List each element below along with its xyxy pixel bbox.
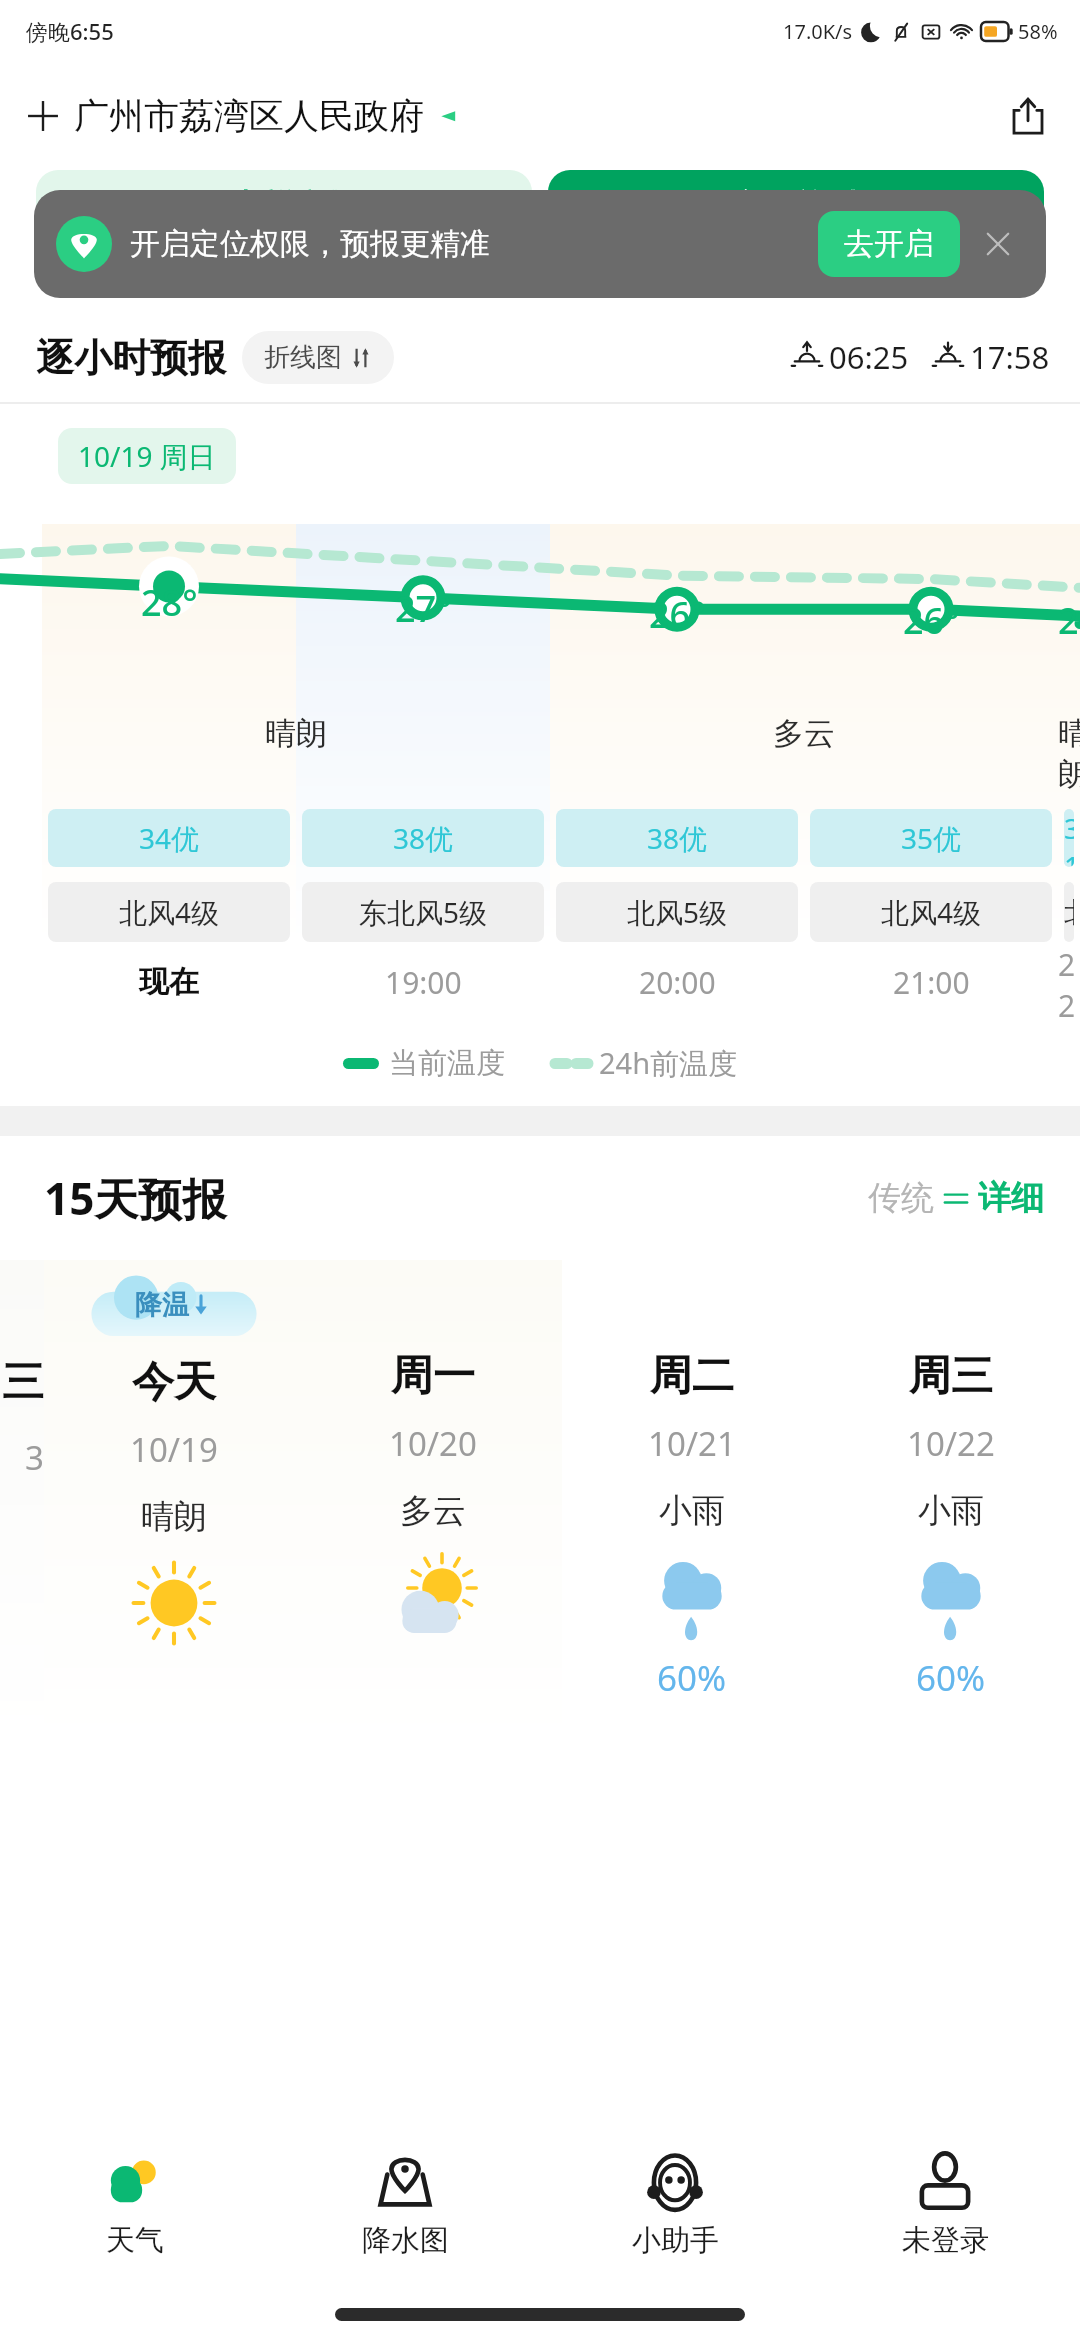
staticText: 多云	[773, 714, 835, 753]
staticText: 60%	[657, 1654, 727, 1702]
staticText: 开启定位权限，预报更精准	[130, 225, 490, 263]
button[interactable]: 周二	[562, 1260, 821, 1750]
button[interactable]: Add city	[26, 94, 460, 138]
staticText: 58%	[1018, 18, 1058, 45]
staticText: 晴朗	[141, 1496, 207, 1538]
staticText: 15天预报	[44, 1168, 227, 1228]
staticText: 小雨	[918, 1490, 984, 1532]
staticText: 10/22	[907, 1421, 995, 1466]
button[interactable]: 北风4级	[810, 882, 1052, 942]
button[interactable]: Close	[972, 218, 1024, 270]
staticText: 北风4级	[119, 893, 220, 931]
staticText: 21:00	[893, 962, 970, 1003]
staticText: 38优	[393, 819, 454, 857]
button[interactable]: 38优	[556, 809, 798, 867]
button[interactable]: 北风5级	[556, 882, 798, 942]
button[interactable]: 未登录	[810, 2136, 1080, 2288]
staticText: 10/19 周日	[78, 437, 216, 475]
staticText: 20:00	[639, 962, 716, 1003]
button[interactable]: 小助手	[540, 2136, 810, 2288]
staticText: 传统	[868, 1177, 934, 1219]
staticText: 北风4级	[1064, 895, 1074, 930]
button[interactable]: 折线图	[242, 331, 394, 384]
staticText: 当前温度	[389, 1045, 505, 1082]
staticText: 周一	[391, 1350, 475, 1403]
staticText: 17.0K/s	[783, 18, 853, 45]
staticText: 降温	[135, 1288, 189, 1322]
staticText: 现在	[139, 963, 199, 1001]
button[interactable]: 每日签到	[548, 170, 1044, 240]
staticText: 周二	[650, 1350, 734, 1403]
button[interactable]: 北风4级	[48, 882, 290, 942]
staticText: 10/21	[648, 1421, 736, 1466]
staticText: 去开启	[844, 225, 934, 263]
staticText: 38优	[647, 819, 708, 857]
other: Add city	[26, 99, 60, 133]
button[interactable]: 降温	[44, 1260, 303, 1750]
button[interactable]: 北风4级	[1064, 882, 1074, 942]
staticText: 降水图	[362, 2222, 449, 2259]
staticText: 北风4级	[881, 893, 982, 931]
button[interactable]: 传统	[868, 1177, 1044, 1219]
staticText: 小雨	[659, 1490, 725, 1532]
button[interactable]: 东北风5级	[302, 882, 544, 942]
staticText: 22:00	[1058, 944, 1080, 1020]
staticText: 3	[25, 1435, 44, 1480]
staticText: 今天	[132, 1356, 216, 1409]
button[interactable]: 去开启	[818, 211, 960, 277]
button[interactable]: 周一	[303, 1260, 562, 1750]
staticText: 天气	[106, 2222, 164, 2259]
staticText: 北风5级	[627, 893, 728, 931]
staticText: 每日签到	[736, 186, 856, 224]
staticText: 10/20	[389, 1421, 477, 1466]
staticText: 傍晚6:55	[26, 16, 114, 46]
staticText: 10/19	[130, 1427, 218, 1472]
staticText: 24h前温度	[599, 1043, 738, 1083]
staticText: 晴朗	[1058, 714, 1080, 794]
staticText: 折线图	[264, 341, 342, 374]
staticText: 晴朗	[265, 714, 327, 753]
staticText: 小助手	[632, 2222, 719, 2259]
staticText: 精彩活动	[224, 186, 344, 224]
staticText: 广州市荔湾区人民政府	[74, 94, 424, 138]
staticText: 60%	[916, 1654, 986, 1702]
staticText: 06:25	[829, 336, 909, 378]
button[interactable]: 35优	[810, 809, 1052, 867]
staticText: 28°	[141, 578, 198, 627]
button[interactable]: 降水图	[270, 2136, 540, 2288]
staticText: 多云	[400, 1490, 466, 1532]
button[interactable]: 开启定位权限，预报更精准	[34, 190, 1046, 298]
button[interactable]: 天气	[0, 2136, 270, 2288]
staticText: 19:00	[385, 962, 462, 1003]
staticText: 26°	[649, 590, 706, 639]
button[interactable]: 精彩活动	[36, 170, 532, 240]
button[interactable]: 周三	[821, 1260, 1080, 1750]
staticText: 17:58	[970, 336, 1050, 378]
button[interactable]: 34优	[48, 809, 290, 867]
staticText: 三	[2, 1356, 44, 1409]
staticText: 逐小时预报	[36, 334, 226, 382]
staticText: 27°	[395, 584, 452, 633]
staticText: 25°	[1058, 596, 1080, 656]
staticText: 未登录	[902, 2222, 989, 2259]
button[interactable]: 31优	[1064, 809, 1074, 867]
staticText: 东北风5级	[359, 893, 488, 931]
button[interactable]: 38优	[302, 809, 544, 867]
button[interactable]: Share	[1000, 88, 1056, 144]
staticText: 35优	[901, 819, 962, 857]
button[interactable]: 10/19 周日	[58, 428, 236, 484]
staticText: 31优	[1064, 809, 1074, 867]
staticText: 26°	[903, 596, 960, 645]
staticText: 周三	[909, 1350, 993, 1403]
staticText: 详细	[978, 1177, 1044, 1219]
staticText: 34优	[139, 819, 200, 857]
